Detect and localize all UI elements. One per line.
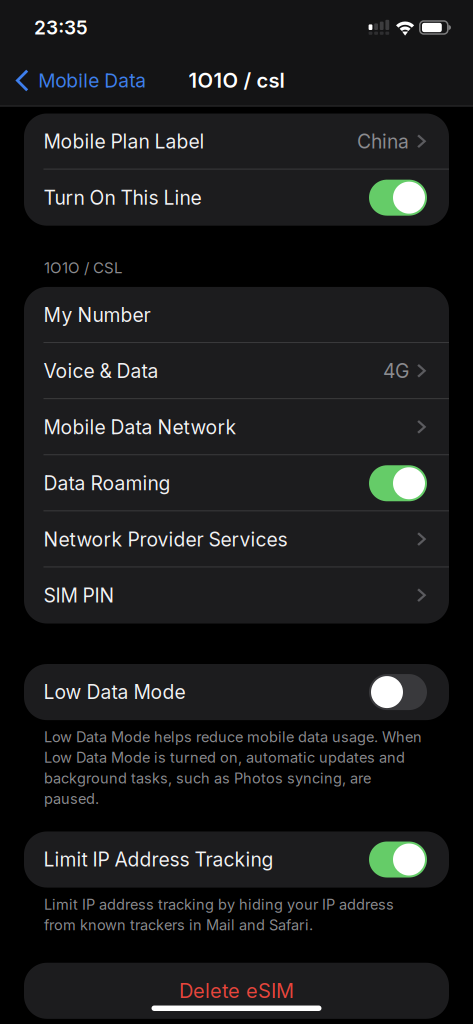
staticText: China (357, 130, 409, 153)
staticText: Data Roaming (43, 472, 170, 495)
staticText: Mobile Plan Label (43, 130, 204, 153)
staticText: Mobile Data Network (43, 415, 236, 439)
staticText: Voice & Data (43, 359, 158, 383)
button[interactable]: Mobile Plan Label (24, 113, 449, 170)
staticText: Mobile Data (38, 69, 146, 92)
button[interactable]: Low Data Mode (24, 664, 449, 720)
button[interactable]: Limit IP Address Tracking (24, 831, 449, 888)
button[interactable]: Mobile Data (0, 58, 158, 102)
staticText: 23:35 (34, 16, 88, 39)
button[interactable]: Network Provider Services (24, 511, 449, 567)
staticText: 1O1O / csl (188, 68, 284, 93)
button[interactable]: Voice & Data (24, 343, 449, 399)
staticText: 1O1O / CSL (44, 259, 123, 277)
staticText: Network Provider Services (43, 528, 287, 551)
button[interactable]: SIM PIN (24, 567, 449, 623)
button[interactable]: My Number (24, 287, 449, 343)
button[interactable]: Mobile Data Network (24, 399, 449, 455)
staticText: Delete eSIM (179, 979, 294, 1003)
button[interactable]: Data Roaming (24, 455, 449, 511)
button[interactable]: Turn On This Line (24, 170, 449, 226)
button[interactable]: Delete eSIM (0, 963, 473, 1019)
staticText: Low Data Mode (43, 680, 185, 704)
staticText: My Number (43, 303, 150, 327)
staticText: Limit IP address tracking by hiding your… (44, 896, 394, 934)
staticText: 4G (383, 359, 409, 383)
staticText: Turn On This Line (43, 186, 201, 209)
staticText: Limit IP Address Tracking (43, 848, 273, 871)
staticText: SIM PIN (43, 584, 114, 607)
staticText: Low Data Mode helps reduce mobile data u… (44, 728, 422, 807)
